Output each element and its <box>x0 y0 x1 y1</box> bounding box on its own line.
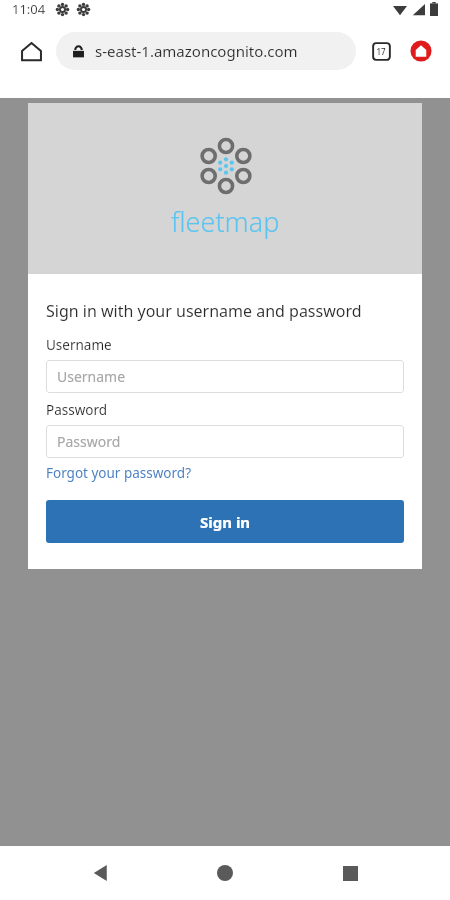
button[interactable]: Forgot your password? <box>46 464 192 482</box>
staticText: s-east-1.amazoncognito.com <box>95 41 298 61</box>
staticText: 17 <box>376 46 386 57</box>
staticText: Username <box>57 367 126 386</box>
staticText: fleetmap <box>171 203 280 240</box>
button[interactable]: Home <box>201 849 249 897</box>
button[interactable]: Username <box>46 360 404 393</box>
button[interactable]: Password <box>46 425 404 458</box>
staticText: 11:04 <box>12 0 46 18</box>
button[interactable]: Menu <box>406 36 436 66</box>
staticText: Sign in with your username and password <box>46 300 362 322</box>
button[interactable]: Home <box>14 34 48 68</box>
staticText: Username <box>46 336 112 354</box>
button[interactable]: Back <box>77 849 125 897</box>
staticText: Forgot your password? <box>46 464 192 482</box>
staticText: Sign in <box>200 512 251 532</box>
button[interactable]: Sign in <box>46 500 404 543</box>
staticText: Password <box>46 401 108 419</box>
button[interactable]: Tabs: 17 <box>366 36 396 66</box>
staticText: Password <box>57 432 121 451</box>
button[interactable]: s-east-1.amazoncognito.com <box>56 32 356 70</box>
button[interactable]: Recent apps <box>326 849 374 897</box>
